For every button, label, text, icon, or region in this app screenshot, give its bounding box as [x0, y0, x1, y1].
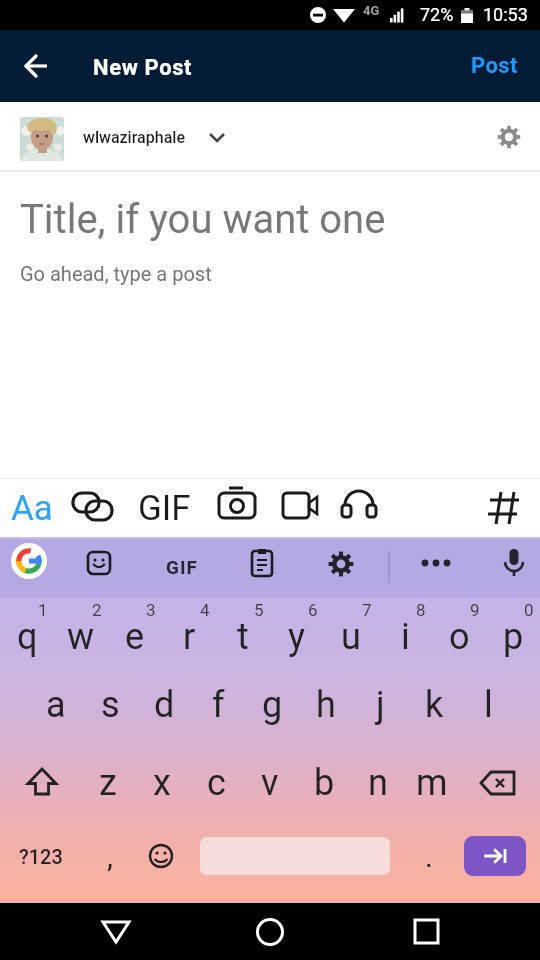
button[interactable]: a: [29, 667, 83, 743]
staticText: k: [425, 684, 444, 726]
staticText: 3: [146, 600, 156, 620]
button[interactable]: [0, 30, 56, 102]
button[interactable]: k: [407, 667, 461, 743]
button[interactable]: [398, 903, 454, 960]
button[interactable]: j: [353, 667, 407, 743]
button[interactable]: [415, 549, 459, 585]
button[interactable]: s: [83, 667, 137, 743]
staticText: 0: [524, 600, 534, 620]
staticText: r: [183, 616, 196, 658]
staticText: j: [376, 684, 385, 726]
staticText: 6: [308, 600, 318, 620]
button[interactable]: e: [108, 599, 162, 675]
button[interactable]: q: [0, 599, 54, 675]
button[interactable]: ?123: [6, 814, 76, 898]
button[interactable]: [497, 125, 521, 149]
button[interactable]: [88, 903, 144, 960]
staticText: Go ahead, type a post: [20, 262, 212, 285]
staticText: m: [416, 762, 448, 804]
button[interactable]: o: [432, 599, 486, 675]
button[interactable]: [487, 486, 527, 530]
button[interactable]: n: [351, 745, 405, 821]
staticText: 72%: [420, 4, 454, 25]
button[interactable]: p: [486, 599, 540, 675]
staticText: d: [154, 684, 175, 726]
button[interactable]: wlwaziraphale: [83, 102, 225, 172]
staticText: c: [207, 762, 226, 804]
button[interactable]: z: [81, 745, 135, 821]
button[interactable]: [500, 547, 530, 587]
button[interactable]: GIF: [160, 549, 204, 585]
button[interactable]: [468, 745, 526, 821]
button[interactable]: Post: [471, 53, 518, 79]
button[interactable]: t: [216, 599, 270, 675]
button[interactable]: [212, 486, 260, 530]
staticText: v: [261, 762, 279, 804]
button[interactable]: .: [410, 814, 448, 898]
button[interactable]: [142, 814, 182, 898]
staticText: g: [262, 684, 283, 726]
staticText: i: [401, 616, 410, 658]
staticText: t: [237, 616, 249, 658]
staticText: 4G: [363, 3, 380, 18]
staticText: ,: [107, 839, 113, 874]
staticText: f: [212, 684, 225, 726]
button[interactable]: [464, 836, 526, 876]
staticText: o: [449, 616, 470, 658]
staticText: 5: [254, 600, 264, 620]
button[interactable]: r: [162, 599, 216, 675]
staticText: 10:53: [483, 4, 528, 25]
staticText: 9: [470, 600, 480, 620]
button[interactable]: x: [135, 745, 189, 821]
staticText: b: [314, 762, 335, 804]
button[interactable]: [11, 543, 47, 579]
button[interactable]: GIF: [133, 486, 195, 530]
button[interactable]: [85, 549, 115, 579]
button[interactable]: [14, 745, 70, 821]
button[interactable]: Aa: [10, 486, 54, 530]
button[interactable]: v: [243, 745, 297, 821]
staticText: Aa: [11, 488, 53, 529]
button[interactable]: [20, 117, 64, 161]
staticText: x: [153, 762, 171, 804]
staticText: wlwaziraphale: [83, 128, 185, 147]
button[interactable]: h: [299, 667, 353, 743]
button[interactable]: u: [324, 599, 378, 675]
button[interactable]: [327, 549, 357, 579]
button[interactable]: [248, 548, 278, 578]
staticText: q: [17, 616, 38, 658]
staticText: p: [503, 616, 524, 658]
staticText: w: [67, 616, 95, 658]
button[interactable]: b: [297, 745, 351, 821]
button[interactable]: ,: [90, 814, 130, 898]
button[interactable]: [242, 903, 298, 960]
staticText: u: [341, 616, 361, 658]
staticText: GIF: [166, 556, 198, 578]
staticText: Title, if you want one: [20, 196, 386, 243]
button[interactable]: w: [54, 599, 108, 675]
staticText: s: [101, 684, 120, 726]
button[interactable]: f: [191, 667, 245, 743]
staticText: n: [368, 762, 388, 804]
staticText: 7: [362, 600, 372, 620]
staticText: .: [425, 839, 433, 874]
button[interactable]: [64, 486, 120, 530]
button[interactable]: m: [405, 745, 459, 821]
staticText: New Post: [93, 55, 193, 81]
staticText: 4: [200, 600, 210, 620]
button[interactable]: y: [270, 599, 324, 675]
staticText: 2: [92, 600, 102, 620]
button[interactable]: i: [378, 599, 432, 675]
button[interactable]: l: [461, 667, 515, 743]
staticText: a: [46, 684, 66, 726]
staticText: GIF: [138, 488, 191, 529]
button[interactable]: d: [137, 667, 191, 743]
button[interactable]: [200, 837, 390, 875]
button[interactable]: g: [245, 667, 299, 743]
button[interactable]: c: [189, 745, 243, 821]
button[interactable]: [280, 486, 328, 530]
button[interactable]: [340, 486, 388, 530]
staticText: 8: [416, 600, 426, 620]
staticText: h: [316, 684, 336, 726]
staticText: y: [288, 616, 306, 658]
